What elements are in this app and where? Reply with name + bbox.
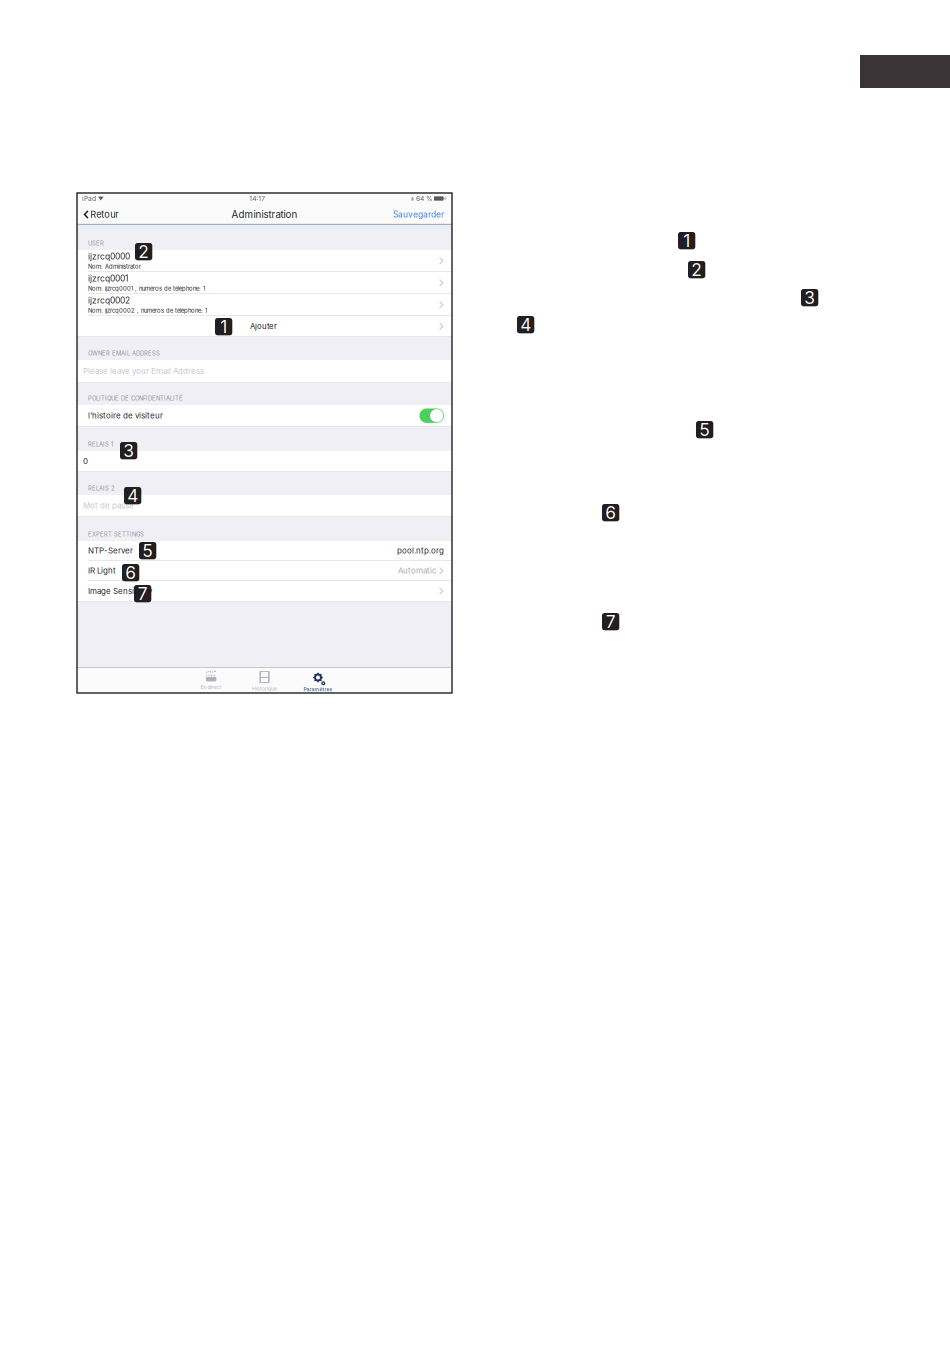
staticText: 14:17 (249, 194, 265, 203)
staticText: 3 (804, 287, 815, 308)
staticText: 3 (123, 440, 134, 461)
staticText: 7 (138, 583, 148, 604)
staticText: 1 (220, 316, 227, 337)
staticText: Ajouter (250, 321, 277, 331)
staticText: Automatic (398, 566, 437, 575)
staticText: 6 (125, 562, 136, 583)
staticText: Mot de passe (83, 501, 134, 510)
button[interactable]: Ajouter (77, 316, 452, 337)
button[interactable]: ijzrcq0001 (77, 272, 452, 294)
staticText: 7 (606, 611, 616, 632)
staticText: POLITIQUE DE CONFIDENTIALITÉ (88, 395, 183, 402)
button[interactable]: Paramètres (291, 667, 345, 693)
button[interactable]: Image Sensitivity (77, 581, 452, 602)
staticText: pool.ntp.org (397, 546, 444, 555)
button[interactable]: Historique (238, 667, 291, 693)
staticText: USER (88, 240, 104, 247)
staticText: Please leave your Email Address (83, 366, 204, 376)
staticText: RELAIS 2 (88, 485, 115, 492)
button[interactable]: Retour (77, 204, 124, 225)
staticText: iPad (82, 194, 96, 203)
staticText: EXPERT SETTINGS (88, 531, 144, 538)
staticText: 1 (683, 230, 690, 251)
staticText: Administration (231, 209, 297, 220)
staticText: ijzrcq0002 (88, 295, 130, 305)
staticText: 6 (605, 502, 616, 523)
staticText: ijzrcq0001 (88, 273, 128, 283)
staticText: IR Light (88, 566, 116, 575)
staticText: Nom: ijzrcq0002 , numéros de téléphone: … (88, 307, 207, 314)
button[interactable]: ijzrcq0002 (77, 294, 452, 316)
staticText: 2 (691, 259, 702, 280)
staticText: OWNER EMAIL ADDRESS (88, 350, 160, 357)
staticText: Retour (90, 209, 118, 220)
staticText: 64 % (414, 194, 433, 203)
button[interactable]: Sauvegarder (393, 204, 452, 225)
staticText: Nom: Administrator (88, 263, 141, 270)
staticText: Image Sensitivity (88, 586, 152, 596)
staticText: 4 (520, 314, 531, 335)
staticText: Sauvegarder (393, 209, 444, 220)
staticText: Historique (252, 685, 277, 692)
button[interactable]: ijzrcq0000 (77, 250, 452, 272)
staticText: RELAIS 1 (88, 441, 113, 448)
button[interactable]: En direct (184, 667, 238, 693)
staticText: 2 (138, 241, 149, 262)
staticText: 4 (127, 485, 138, 506)
button[interactable]: l'histoire de visiteur (419, 408, 444, 423)
staticText: Nom: ijzrcq0001 , numéros de téléphone: … (88, 285, 205, 292)
staticText: l'histoire de visiteur (88, 411, 163, 420)
staticText: En direct (200, 684, 221, 690)
staticText: 5 (142, 540, 153, 561)
staticText: 5 (699, 419, 710, 440)
staticText: ijzrcq0000 (88, 251, 130, 261)
staticText: NTP-Server (88, 546, 133, 555)
staticText: Paramètres (303, 686, 332, 692)
staticText: 0 (83, 456, 88, 466)
button[interactable]: IR Light (77, 561, 452, 581)
